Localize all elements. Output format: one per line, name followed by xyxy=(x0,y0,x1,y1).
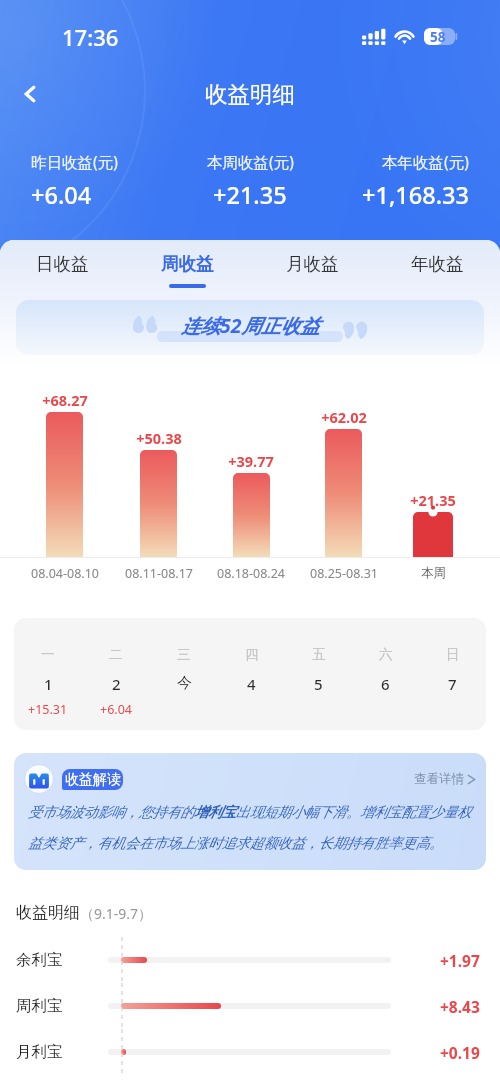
button[interactable]: Back xyxy=(8,72,52,116)
staticText: 昨日收益(元) xyxy=(31,151,118,172)
staticText: +21.35 xyxy=(213,179,287,211)
staticText: 本周 xyxy=(421,565,446,581)
staticText: 2 xyxy=(112,674,121,694)
staticText: 日收益 xyxy=(36,253,89,275)
button[interactable]: 日收益 xyxy=(0,240,125,297)
staticText: +62.02 xyxy=(321,407,367,427)
staticText: 1 xyxy=(44,674,53,694)
staticText: +68.27 xyxy=(42,390,88,410)
staticText: 年收益 xyxy=(411,253,464,275)
staticText: +1.97 xyxy=(440,950,480,971)
staticText: +6.04 xyxy=(100,701,132,718)
button[interactable]: 周利宝 xyxy=(0,983,500,1029)
staticText: 5 xyxy=(314,674,323,694)
button[interactable]: 查看详情 xyxy=(414,771,476,787)
staticText: 受市场波动影响，您持有的增利宝出现短期小幅下滑。增利宝配置少量权益类资产，有机会… xyxy=(28,803,476,852)
button[interactable]: 周收益 xyxy=(125,240,250,297)
staticText: 收益明细 xyxy=(205,80,295,108)
staticText: （9.1-9.7） xyxy=(80,904,153,923)
staticText: 4 xyxy=(247,674,256,694)
button[interactable]: 收益解读 xyxy=(14,753,486,870)
staticText: +8.43 xyxy=(440,996,480,1017)
staticText: 58 xyxy=(430,28,446,45)
staticText: 余利宝 xyxy=(16,950,63,970)
staticText: 今 xyxy=(177,674,192,693)
staticText: 二 xyxy=(109,646,123,663)
button[interactable]: 月收益 xyxy=(250,240,375,297)
staticText: 六 xyxy=(379,646,393,663)
staticText: 08.25-08.31 xyxy=(310,565,378,582)
staticText: 6 xyxy=(381,674,390,694)
staticText: 本周收益(元) xyxy=(207,151,294,172)
staticText: 四 xyxy=(245,646,259,663)
staticText: 周利宝 xyxy=(16,996,63,1016)
staticText: 月收益 xyxy=(286,253,339,275)
staticText: 本年收益(元) xyxy=(382,151,469,172)
staticText: 7 xyxy=(448,674,457,694)
staticText: 08.11-08.17 xyxy=(125,565,193,582)
button[interactable]: 月利宝 xyxy=(0,1029,500,1075)
staticText: +0.19 xyxy=(440,1042,480,1063)
staticText: 五 xyxy=(312,646,326,663)
staticText: +1,168.33 xyxy=(362,179,469,211)
staticText: +21.35 xyxy=(410,490,456,510)
staticText: 收益解读 xyxy=(65,771,121,789)
staticText: 月利宝 xyxy=(16,1042,63,1062)
staticText: 08.18-08.24 xyxy=(217,565,285,582)
staticText: 17:36 xyxy=(62,22,119,52)
staticText: +6.04 xyxy=(31,179,92,211)
staticText: 08.04-08.10 xyxy=(31,565,99,582)
staticText: 连续52周正收益 xyxy=(181,312,320,339)
staticText: 查看详情 xyxy=(414,771,464,787)
staticText: 日 xyxy=(446,646,460,663)
staticText: 收益明细 xyxy=(16,903,80,923)
staticText: +50.38 xyxy=(136,428,182,448)
staticText: +39.77 xyxy=(228,451,274,471)
staticText: 周收益 xyxy=(161,253,214,275)
button[interactable]: 年收益 xyxy=(375,240,500,297)
staticText: 三 xyxy=(177,646,191,663)
staticText: 一 xyxy=(41,646,55,663)
button[interactable]: 余利宝 xyxy=(0,937,500,983)
staticText: +15.31 xyxy=(28,701,68,718)
